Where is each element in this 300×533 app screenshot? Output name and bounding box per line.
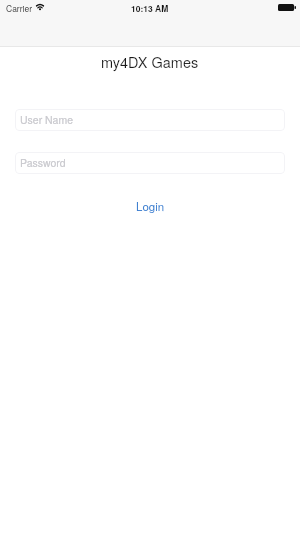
staticText: Login <box>136 198 165 214</box>
button[interactable]: User Name <box>15 109 285 131</box>
other: Wi-Fi signal <box>36 3 44 10</box>
button[interactable]: Password <box>15 152 285 174</box>
staticText: User Name <box>20 112 74 127</box>
staticText: Password <box>20 155 66 170</box>
button[interactable]: Login <box>116 194 185 218</box>
staticText: my4DX Games <box>101 51 199 72</box>
staticText: Carrier <box>6 2 32 14</box>
staticText: 10:13 AM <box>131 2 169 14</box>
other: Battery full <box>278 4 296 11</box>
